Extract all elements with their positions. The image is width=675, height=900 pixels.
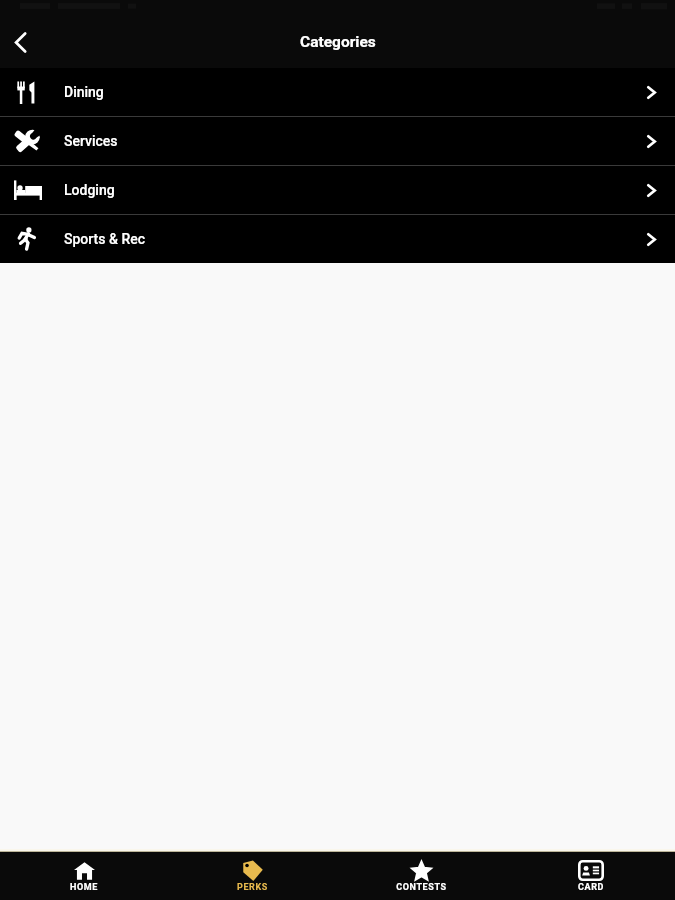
button[interactable]: PERKS bbox=[168, 852, 337, 900]
staticText: HOME bbox=[70, 882, 98, 893]
button[interactable]: Sports & Rec bbox=[0, 215, 675, 263]
button[interactable]: HOME bbox=[0, 852, 168, 900]
button[interactable]: CARD bbox=[506, 852, 675, 900]
staticText: CONTESTS bbox=[396, 882, 447, 893]
staticText: PERKS bbox=[237, 882, 268, 893]
staticText: Lodging bbox=[64, 182, 115, 198]
staticText: Categories bbox=[300, 33, 376, 51]
button[interactable]: Back bbox=[0, 22, 40, 62]
staticText: Dining bbox=[64, 84, 104, 100]
button[interactable]: CONTESTS bbox=[337, 852, 506, 900]
button[interactable]: Lodging bbox=[0, 166, 675, 214]
staticText: Services bbox=[64, 133, 118, 149]
staticText: CARD bbox=[578, 882, 604, 893]
staticText: Sports & Rec bbox=[64, 231, 145, 247]
button[interactable]: Dining bbox=[0, 68, 675, 116]
button[interactable]: Services bbox=[0, 117, 675, 165]
